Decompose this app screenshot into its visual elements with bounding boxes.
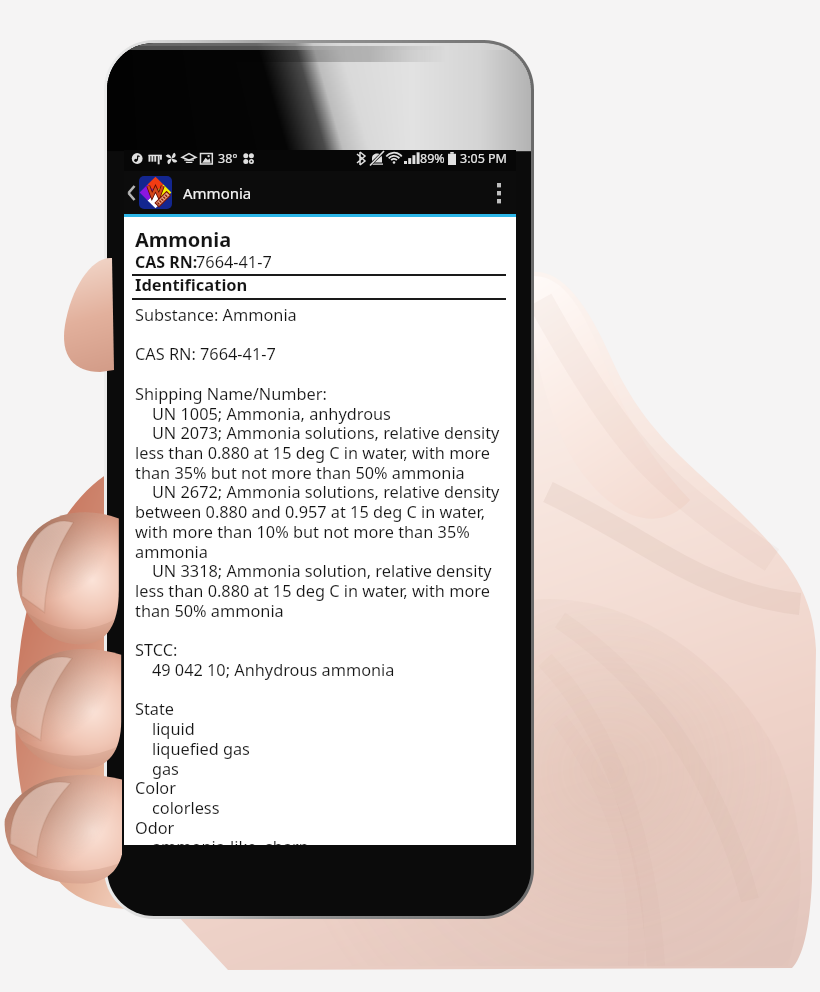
staticText: gas (135, 758, 179, 780)
staticText: UN 2672; Ammonia solutions, relative den… (135, 481, 500, 503)
staticText: less than 0.880 at 15 deg C in water, wi… (135, 580, 490, 602)
staticText: Ammonia (183, 183, 252, 203)
staticText: ammonia (135, 541, 208, 563)
staticText: UN 3318; Ammonia solution, relative dens… (135, 560, 492, 582)
staticText: less than 0.880 at 15 deg C in water, wi… (135, 442, 490, 464)
staticText: Substance: Ammonia (135, 304, 297, 326)
staticText: CAS RN: 7664-41-7 (135, 343, 276, 365)
staticText: Shipping Name/Number: (135, 383, 327, 405)
staticText: 38° (218, 150, 238, 167)
staticText: ammonia-like, sharp (135, 836, 309, 845)
staticText: between 0.880 and 0.957 at 15 deg C in w… (135, 501, 486, 523)
staticText: 49 042 10; Anhydrous ammonia (135, 659, 395, 681)
staticText: CAS RN: (135, 251, 198, 273)
staticText: UN 2073; Ammonia solutions, relative den… (135, 422, 500, 444)
staticText: colorless (135, 797, 220, 819)
staticText: 7664-41-7 (196, 251, 272, 273)
staticText: than 35% but not more than 50% ammonia (135, 462, 465, 484)
staticText: Ammonia (135, 226, 232, 253)
staticText: UN 1005; Ammonia, anhydrous (135, 403, 391, 425)
staticText: State (135, 698, 175, 720)
button[interactable]: More options (482, 173, 516, 213)
staticText: Identification (135, 273, 248, 295)
staticText: 89% (420, 150, 445, 167)
staticText: 3:05 PM (460, 150, 507, 167)
staticText: Odor (135, 817, 175, 839)
staticText: with more than 10% but not more than 35% (135, 521, 470, 543)
staticText: Color (135, 777, 176, 799)
button[interactable]: Navigate up (124, 176, 178, 209)
staticText: than 50% ammonia (135, 600, 284, 622)
staticText: STCC: (135, 639, 178, 661)
staticText: liquefied gas (135, 738, 250, 760)
staticText: liquid (135, 718, 195, 740)
